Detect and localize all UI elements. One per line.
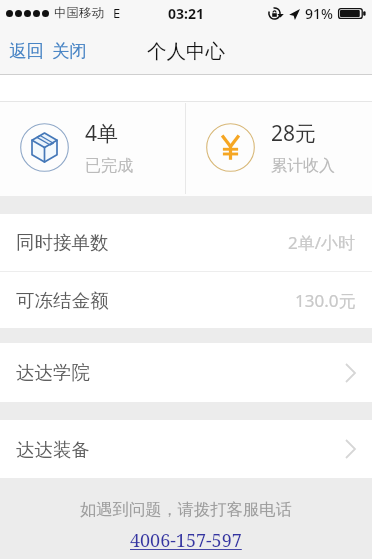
- staticText: 个人中心: [147, 39, 225, 64]
- button[interactable]: 达达学院: [0, 343, 372, 402]
- other: 达达学院: [345, 363, 356, 383]
- button[interactable]: 同时接单数: [0, 214, 372, 271]
- staticText: 返回: [9, 40, 44, 62]
- staticText: 中国移动: [54, 5, 104, 21]
- button[interactable]: 达达装备: [0, 420, 372, 478]
- staticText: 91%: [305, 4, 333, 23]
- staticText: 达达学院: [16, 361, 90, 384]
- button[interactable]: 返回: [0, 32, 48, 70]
- button[interactable]: 可冻结金额: [0, 272, 372, 328]
- staticText: 累计收入: [271, 156, 335, 176]
- staticText: 关闭: [52, 40, 87, 62]
- staticText: 03:21: [168, 4, 204, 23]
- staticText: 可冻结金额: [16, 289, 109, 312]
- staticText: 130.0元: [295, 289, 356, 312]
- button[interactable]: 关闭: [48, 32, 95, 70]
- staticText: 4006-157-597: [130, 528, 242, 553]
- button[interactable]: 4单: [0, 101, 185, 196]
- staticText: 已完成: [85, 156, 133, 176]
- staticText: E: [113, 4, 121, 22]
- staticText: 同时接单数: [16, 231, 109, 254]
- button[interactable]: 4006-157-597: [130, 528, 242, 553]
- other: 达达装备: [345, 439, 356, 459]
- button[interactable]: 28元: [186, 101, 372, 196]
- staticText: 4单: [85, 119, 119, 148]
- staticText: 28元: [271, 119, 317, 148]
- staticText: 达达装备: [16, 438, 90, 461]
- staticText: 2单/小时: [288, 231, 356, 254]
- staticText: 如遇到问题，请拨打客服电话: [80, 499, 292, 520]
